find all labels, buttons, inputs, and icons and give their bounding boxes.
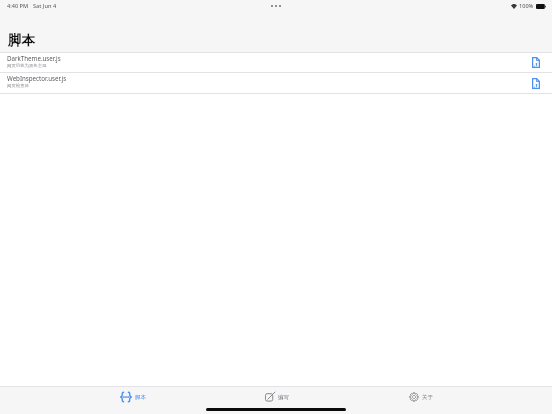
staticText: DarkTheme.user.js (7, 54, 61, 62)
staticText: 脚本 (8, 32, 35, 49)
staticText: WebInspector.user.js (7, 74, 67, 82)
button[interactable]: Compose (205, 391, 349, 403)
other: Scripts (120, 392, 132, 402)
staticText: 编写 (278, 394, 289, 401)
staticText: 脚本 (135, 394, 146, 401)
button[interactable]: DarkTheme.user.js (0, 53, 552, 72)
button[interactable]: About (349, 391, 493, 403)
staticText: 网页切换为黑色主题 (7, 63, 47, 69)
staticText: 关于 (422, 394, 433, 401)
other: Compose (265, 392, 275, 402)
button[interactable]: Scripts (61, 391, 205, 403)
staticText: 网页检查器 (7, 83, 29, 89)
staticText: 4:40 PM (7, 2, 29, 10)
other: About (409, 392, 419, 402)
staticText: Sat Jun 4 (33, 2, 57, 10)
staticText: 100% (519, 2, 534, 10)
button[interactable]: WebInspector.user.js (0, 73, 552, 93)
